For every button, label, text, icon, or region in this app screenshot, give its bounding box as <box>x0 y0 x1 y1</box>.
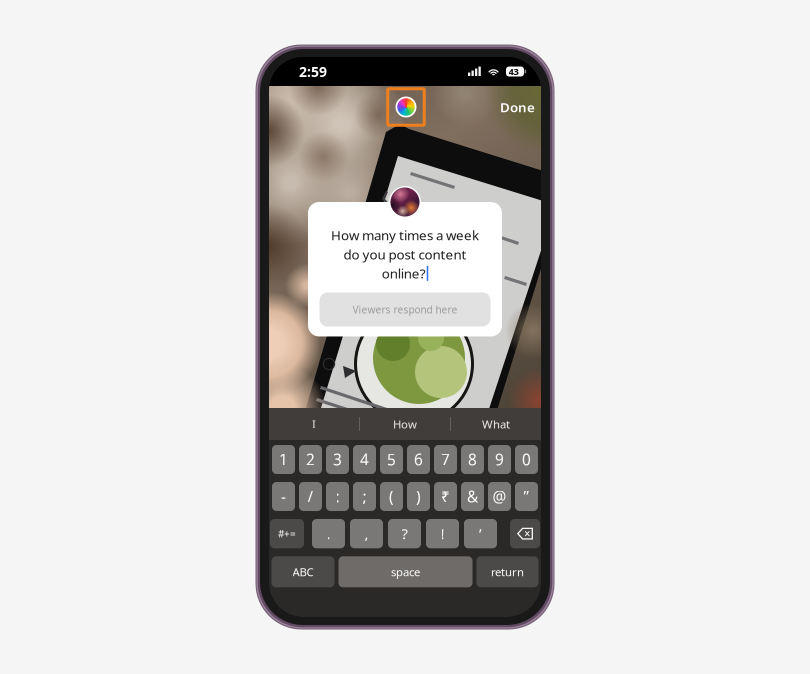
button[interactable]: ” <box>515 482 538 511</box>
staticText: 2 <box>306 449 315 470</box>
staticText: return <box>491 564 524 579</box>
button[interactable]: What <box>451 408 541 440</box>
button[interactable]: 7 <box>434 445 457 474</box>
staticText: How many times a week <box>331 226 479 244</box>
staticText: 1 <box>279 449 288 470</box>
staticText: ( <box>389 486 394 507</box>
button[interactable]: ABC <box>271 556 334 587</box>
staticText: . <box>326 524 330 544</box>
button[interactable]: . <box>312 519 345 548</box>
staticText: online? <box>382 264 426 282</box>
button[interactable]: space <box>338 556 472 587</box>
button[interactable]: 3 <box>326 445 349 474</box>
button[interactable]: - <box>272 482 295 511</box>
staticText: space <box>391 564 420 579</box>
staticText: 43 <box>509 65 519 78</box>
staticText: ₹ <box>441 486 450 507</box>
button[interactable]: 1 <box>272 445 295 474</box>
staticText: ) <box>416 486 421 507</box>
button[interactable]: ’ <box>464 519 497 548</box>
button[interactable]: 2 <box>299 445 322 474</box>
button[interactable]: return <box>476 556 538 587</box>
staticText: ” <box>523 486 529 507</box>
staticText: do you post content <box>343 245 466 263</box>
button[interactable]: Color picker <box>388 89 424 125</box>
staticText: Viewers respond here <box>352 303 457 316</box>
staticText: 6 <box>414 449 423 470</box>
staticText: / <box>307 486 313 507</box>
button[interactable]: ₹ <box>434 482 457 511</box>
staticText: ABC <box>292 564 313 579</box>
staticText: How <box>393 416 417 432</box>
staticText: ; <box>362 486 366 507</box>
staticText: 8 <box>468 449 477 470</box>
button[interactable]: : <box>326 482 349 511</box>
button[interactable]: ! <box>426 519 459 548</box>
staticText: What <box>482 416 510 432</box>
staticText: 3 <box>333 449 342 470</box>
staticText: ’ <box>479 524 482 544</box>
button[interactable]: 8 <box>461 445 484 474</box>
staticText: ! <box>440 524 444 544</box>
button[interactable]: & <box>461 482 484 511</box>
staticText: 7 <box>441 449 450 470</box>
staticText: 2:59 <box>299 62 327 81</box>
button[interactable]: 0 <box>515 445 538 474</box>
button[interactable]: I <box>269 408 359 440</box>
button[interactable]: #+= <box>270 519 304 548</box>
button[interactable]: ) <box>407 482 430 511</box>
staticText: 5 <box>387 449 396 470</box>
staticText: 9 <box>495 449 504 470</box>
button[interactable]: ; <box>353 482 376 511</box>
button[interactable]: ? <box>388 519 421 548</box>
button[interactable]: 5 <box>380 445 403 474</box>
button[interactable]: 6 <box>407 445 430 474</box>
staticText: ? <box>401 524 407 544</box>
button[interactable]: , <box>350 519 383 548</box>
button[interactable]: How <box>360 408 450 440</box>
button[interactable]: Done <box>494 90 541 124</box>
button[interactable]: @ <box>488 482 511 511</box>
button[interactable]: ( <box>380 482 403 511</box>
staticText: Done <box>500 98 535 116</box>
staticText: , <box>364 524 368 544</box>
staticText: 0 <box>522 449 531 470</box>
staticText: & <box>467 486 478 507</box>
staticText: 4 <box>360 449 369 470</box>
staticText: #+= <box>278 527 296 540</box>
button[interactable]: Delete <box>510 519 540 548</box>
staticText: - <box>281 486 286 507</box>
staticText: : <box>335 486 339 507</box>
button[interactable]: 9 <box>488 445 511 474</box>
staticText: @ <box>492 486 506 507</box>
button[interactable]: 4 <box>353 445 376 474</box>
staticText: I <box>312 416 316 432</box>
button[interactable]: / <box>299 482 322 511</box>
